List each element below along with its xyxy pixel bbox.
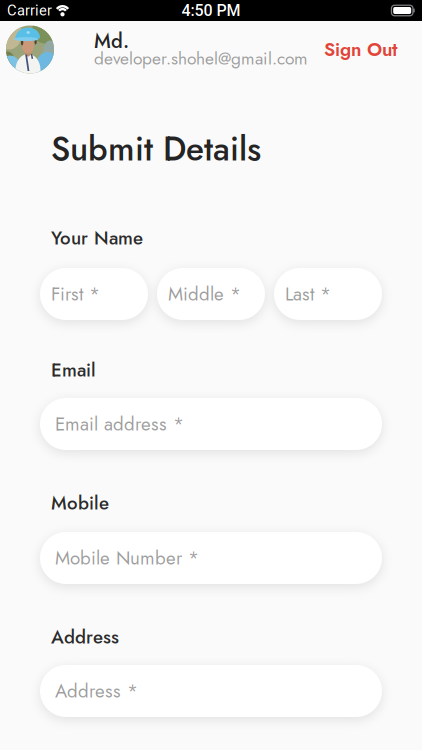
staticText: Last *	[285, 281, 331, 307]
button[interactable]: Email address *	[40, 398, 382, 450]
staticText: Your Name	[51, 225, 143, 251]
staticText: First *	[51, 281, 100, 307]
staticText: developer.shohel@gmail.com	[94, 46, 308, 71]
button[interactable]: First *	[40, 268, 148, 320]
staticText: Carrier	[7, 2, 52, 19]
staticText: Mobile	[51, 490, 109, 516]
staticText: Middle *	[168, 281, 241, 307]
staticText: Address *	[55, 678, 138, 704]
staticText: Address	[51, 624, 119, 650]
staticText: Submit Details	[51, 125, 261, 172]
button[interactable]: Mobile Number *	[40, 532, 382, 584]
staticText: Md.	[94, 27, 129, 55]
staticText: Mobile Number *	[55, 545, 199, 571]
staticText: Email	[51, 357, 96, 383]
button[interactable]: Address *	[40, 665, 382, 717]
button[interactable]: Middle *	[157, 268, 265, 320]
button[interactable]: Sign Out	[324, 36, 397, 63]
staticText: Sign Out	[324, 36, 397, 63]
staticText: Email address *	[55, 411, 184, 437]
staticText: 4:50 PM	[181, 1, 240, 20]
button[interactable]: Last *	[274, 268, 382, 320]
